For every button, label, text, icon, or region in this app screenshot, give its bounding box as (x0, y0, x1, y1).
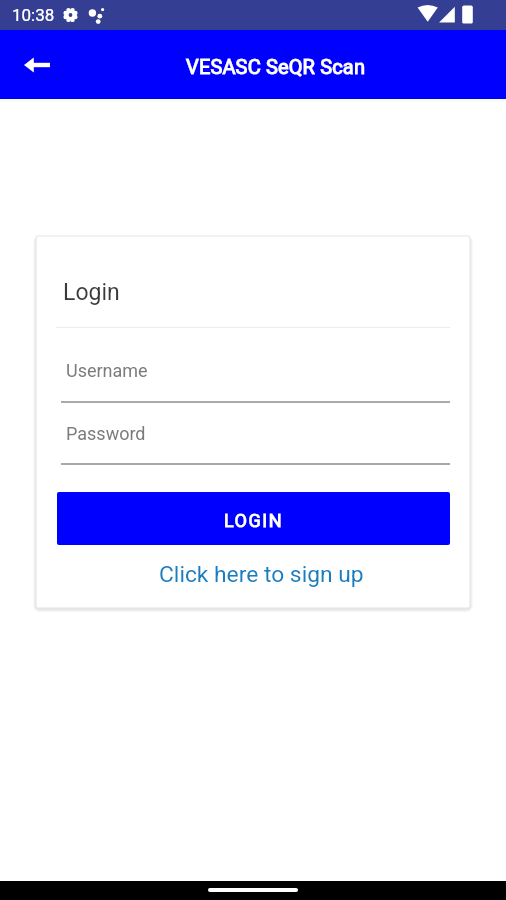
button[interactable]: Click here to sign up (65, 551, 458, 597)
button[interactable]: Back (9, 37, 65, 93)
staticText: VESASC SeQR Scan (186, 55, 366, 78)
staticText: Username (66, 360, 148, 381)
button[interactable]: LOGIN (57, 492, 450, 545)
staticText: Login (63, 279, 120, 306)
staticText: LOGIN (224, 510, 284, 531)
staticText: Password (66, 423, 146, 444)
staticText: Click here to sign up (159, 561, 364, 588)
staticText: 10:38 (12, 5, 55, 25)
